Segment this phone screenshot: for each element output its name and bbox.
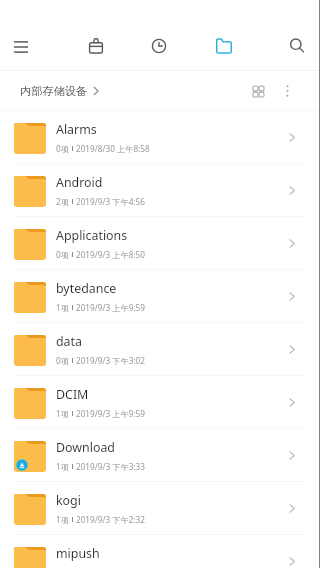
staticText: 2019/9/3 上午9:59: [76, 408, 145, 419]
staticText: 2019/9/3 上午9:59: [76, 302, 145, 313]
staticText: DCIM: [56, 386, 89, 403]
staticText: mipush: [56, 545, 100, 562]
staticText: kogi: [56, 492, 81, 509]
button[interactable]: Files: [209, 31, 239, 61]
staticText: Download: [56, 439, 115, 456]
staticText: 2019/9/3 下午3:33: [76, 461, 145, 472]
button[interactable]: Alarms: [0, 111, 320, 164]
staticText: 2019/9/3 下午3:02: [76, 355, 145, 366]
staticText: Applications: [56, 227, 128, 244]
staticText: 2019/8/30 上午8:58: [76, 143, 150, 154]
button[interactable]: Applications: [0, 217, 320, 270]
staticText: 2项: [56, 196, 69, 207]
button[interactable]: mipush: [0, 535, 320, 568]
staticText: 2019/9/3 下午4:56: [76, 196, 145, 207]
staticText: 2019/9/3 上午8:50: [76, 249, 145, 260]
button[interactable]: DCIM: [0, 376, 320, 429]
button[interactable]: kogi: [0, 482, 320, 535]
staticText: 1项: [56, 461, 69, 472]
button[interactable]: More options: [271, 75, 303, 107]
staticText: Alarms: [56, 121, 97, 138]
staticText: 2019/9/3 下午2:32: [76, 514, 145, 525]
staticText: 1项: [56, 408, 69, 419]
staticText: 0项: [56, 249, 69, 260]
staticText: 0项: [56, 355, 69, 366]
staticText: Android: [56, 174, 103, 191]
button[interactable]: Menu: [6, 32, 36, 62]
button[interactable]: Recent: [144, 31, 174, 61]
button[interactable]: Search: [282, 31, 312, 61]
button[interactable]: Cleaner: [81, 31, 111, 61]
button[interactable]: Download: [0, 429, 320, 482]
staticText: 0项: [56, 143, 69, 154]
button[interactable]: bytedance: [0, 270, 320, 323]
staticText: 1项: [56, 302, 69, 313]
button[interactable]: 内部存储设备: [20, 84, 99, 98]
button[interactable]: Grid view: [242, 75, 274, 107]
staticText: 1项: [56, 514, 69, 525]
button[interactable]: data: [0, 323, 320, 376]
staticText: 内部存储设备: [20, 84, 88, 98]
staticText: data: [56, 333, 82, 350]
staticText: bytedance: [56, 280, 117, 297]
button[interactable]: Android: [0, 164, 320, 217]
